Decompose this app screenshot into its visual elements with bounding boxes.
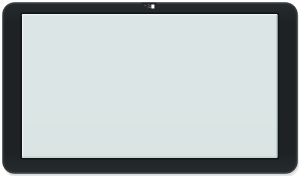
button[interactable]: Tablet device front view: [0, 0, 300, 176]
